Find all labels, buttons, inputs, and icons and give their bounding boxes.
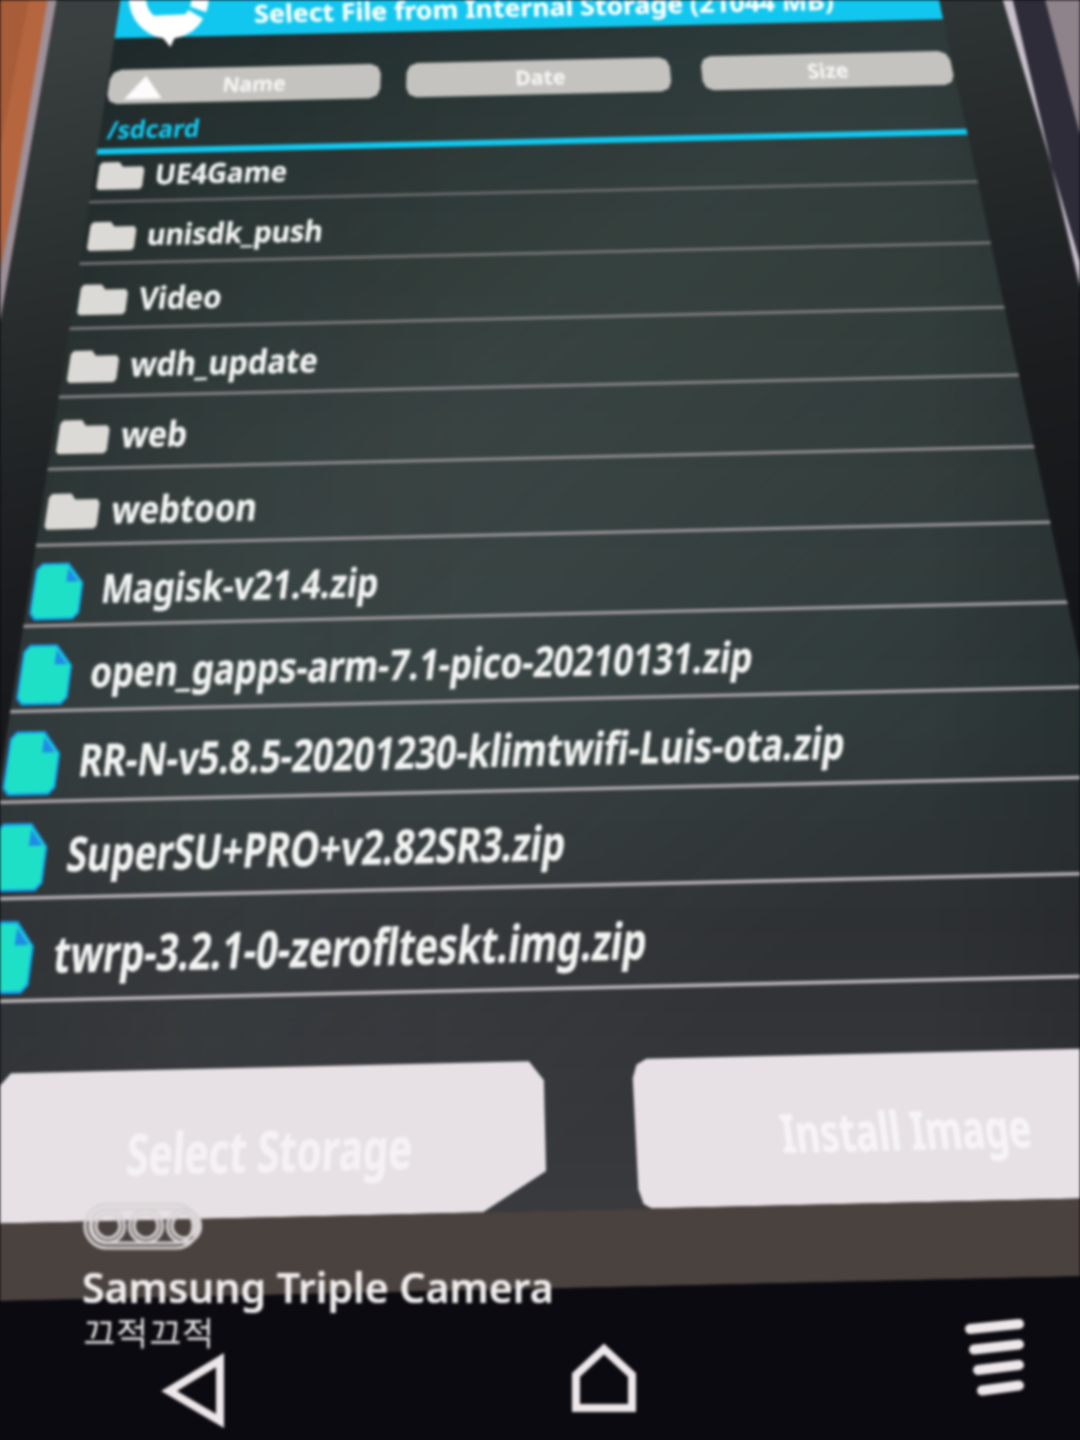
button[interactable]: Install Image — [631, 1035, 1080, 1205]
button[interactable]: SuperSU+PRO+v2.82SR3.zip — [0, 779, 1080, 899]
button[interactable]: UE4Game — [89, 125, 978, 202]
button[interactable]: wdh_update — [59, 309, 1019, 397]
button[interactable]: Sort by Size — [700, 51, 955, 91]
button[interactable]: Sort by Date — [406, 57, 672, 97]
button[interactable]: Home — [545, 1330, 665, 1430]
button[interactable]: Select Storage — [0, 1049, 574, 1214]
button[interactable]: Sort by Name — [106, 64, 381, 104]
button[interactable]: Video — [70, 244, 1005, 328]
button[interactable]: RR-N-v5.8.5-20201230-klimtwifi-Luis-ota.… — [0, 689, 1080, 802]
button[interactable]: Magisk-v21.4.zip — [23, 524, 1067, 626]
button[interactable]: open_gapps-arm-7.1-pico-20210131.zip — [10, 604, 1080, 711]
button[interactable]: Recent apps — [940, 1300, 1060, 1410]
button[interactable]: unisdk_push — [80, 183, 991, 264]
button[interactable]: webtoon — [36, 449, 1050, 546]
button[interactable]: Back — [140, 1340, 260, 1440]
button[interactable]: twrp-3.2.1-0-zeroflteskt.img.zip — [0, 875, 1080, 1002]
button[interactable]: web — [48, 377, 1034, 469]
